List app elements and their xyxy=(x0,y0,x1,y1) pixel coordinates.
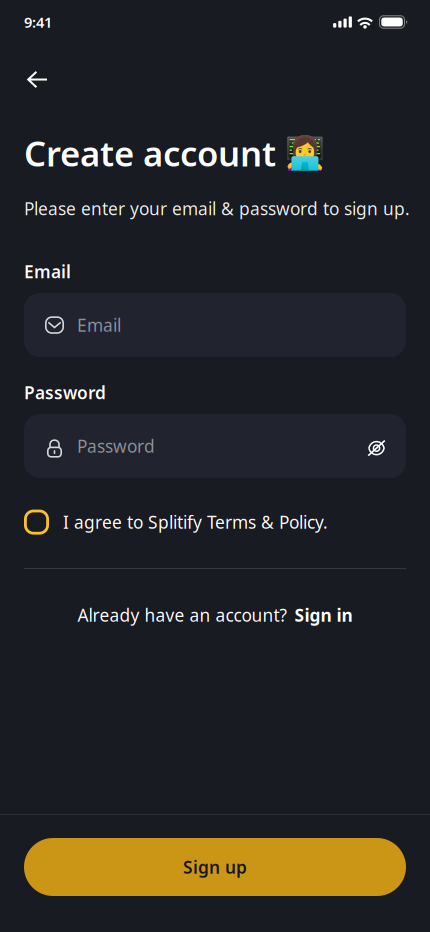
button[interactable]: Sign up xyxy=(24,838,406,896)
staticText: Password xyxy=(24,381,106,404)
staticText: I agree to Splitify Terms & Policy. xyxy=(63,511,328,534)
staticText: Email xyxy=(24,260,71,283)
staticText: 👩‍💻 xyxy=(285,135,325,171)
staticText: Password xyxy=(77,435,155,458)
staticText: Already have an account? xyxy=(77,604,287,627)
button[interactable]: Back xyxy=(0,44,64,99)
staticText: Create account xyxy=(24,130,276,176)
button[interactable]: I agree to Splitify Terms & Policy. xyxy=(0,505,430,539)
staticText: Sign in xyxy=(294,604,352,627)
staticText: 9:41 xyxy=(24,12,52,32)
staticText: Please enter your email & password to si… xyxy=(24,197,410,220)
staticText: Sign up xyxy=(183,855,247,878)
button[interactable]: Sign in xyxy=(287,604,352,627)
button[interactable]: Show password xyxy=(368,436,385,456)
staticText: Email xyxy=(77,314,121,337)
